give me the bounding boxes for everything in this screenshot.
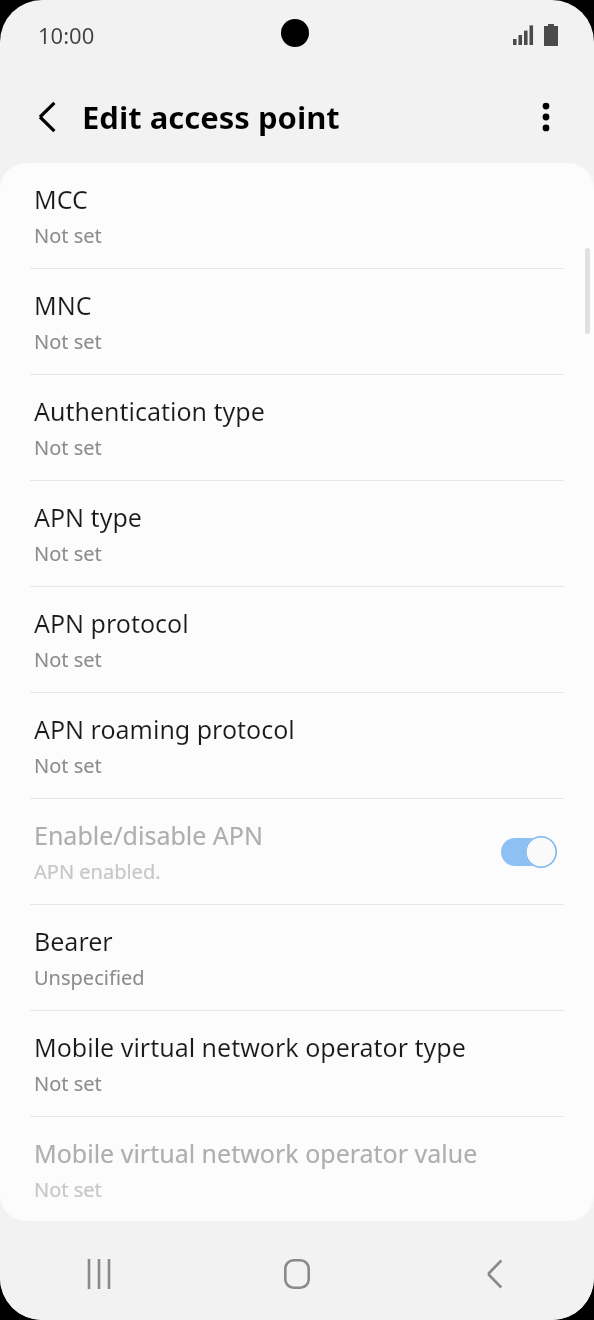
- button[interactable]: Home: [198, 1228, 396, 1320]
- button[interactable]: Back: [22, 91, 74, 143]
- staticText: Not set: [34, 222, 102, 249]
- staticText: 10:00: [38, 20, 95, 50]
- button[interactable]: Enable/disable APN: [0, 799, 594, 904]
- staticText: Bearer: [34, 924, 113, 958]
- button[interactable]: Back: [396, 1228, 594, 1320]
- staticText: APN type: [34, 500, 142, 534]
- button[interactable]: Authentication type: [0, 375, 594, 480]
- staticText: Not set: [34, 752, 102, 779]
- button[interactable]: MNC: [0, 269, 594, 374]
- staticText: Authentication type: [34, 394, 265, 428]
- staticText: Unspecified: [34, 964, 145, 991]
- staticText: Mobile virtual network operator value: [34, 1136, 478, 1170]
- staticText: MCC: [34, 182, 88, 216]
- staticText: Not set: [34, 646, 102, 673]
- button[interactable]: MCC: [0, 163, 594, 268]
- staticText: Mobile virtual network operator type: [34, 1030, 466, 1064]
- staticText: Not set: [34, 328, 102, 355]
- button[interactable]: APN roaming protocol: [0, 693, 594, 798]
- staticText: APN protocol: [34, 606, 189, 640]
- button[interactable]: Mobile virtual network operator type: [0, 1011, 594, 1116]
- staticText: MNC: [34, 288, 92, 322]
- staticText: Not set: [34, 434, 102, 461]
- staticText: Not set: [34, 1070, 102, 1097]
- button[interactable]: Bearer: [0, 905, 594, 1010]
- staticText: APN roaming protocol: [34, 712, 295, 746]
- staticText: APN enabled.: [34, 858, 161, 885]
- staticText: Enable/disable APN: [34, 818, 263, 852]
- button[interactable]: Enable or disable APN: [498, 830, 560, 874]
- button[interactable]: Mobile virtual network operator value: [0, 1117, 594, 1221]
- button[interactable]: Recent apps: [0, 1228, 198, 1320]
- staticText: Not set: [34, 1176, 102, 1203]
- button[interactable]: More options: [520, 91, 572, 143]
- button[interactable]: APN type: [0, 481, 594, 586]
- staticText: Edit access point: [82, 96, 340, 138]
- button[interactable]: APN protocol: [0, 587, 594, 692]
- staticText: Not set: [34, 540, 102, 567]
